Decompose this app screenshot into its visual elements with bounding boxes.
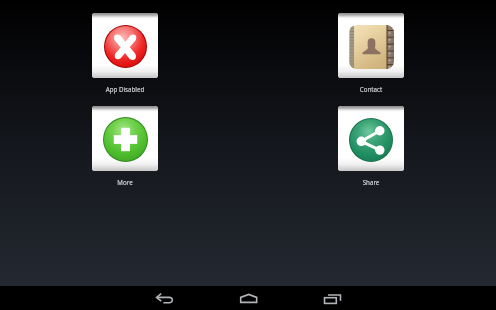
button[interactable]: Home	[228, 286, 268, 310]
staticText: More	[80, 178, 170, 186]
button[interactable]: Share	[326, 106, 416, 186]
button[interactable]: Back	[144, 286, 184, 310]
button[interactable]: App Disabled	[80, 13, 170, 93]
staticText: Contact	[326, 85, 416, 93]
button[interactable]: More	[80, 106, 170, 186]
staticText: App Disabled	[80, 85, 170, 93]
staticText: Share	[326, 178, 416, 186]
button[interactable]: Contact	[326, 13, 416, 93]
button[interactable]: Recent apps	[312, 286, 352, 310]
